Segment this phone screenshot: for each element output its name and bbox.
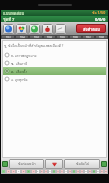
staticText: ส่งคำตอบ [83,26,100,32]
button[interactable]: ชุด1 [1,35,15,39]
staticText: 2 [8,170,10,173]
staticText: ชุดที่ 7 [3,16,15,22]
button[interactable]: Search [29,24,40,34]
button[interactable]: Categories [16,24,27,34]
button[interactable]: ชุด4 [43,35,56,39]
staticText: 1 [3,170,5,173]
staticText: ก. [11,53,14,58]
staticText: 17 [73,170,76,173]
button[interactable]: 23 [96,169,100,174]
button[interactable]: 12 [52,169,56,174]
staticText: 9 [41,170,43,173]
button[interactable]: 13 [56,169,60,174]
button[interactable]: 15 [64,169,68,174]
staticText: ชุด2 [20,35,25,39]
staticText: ชุด4 [47,35,52,39]
staticText: ชุด5 [60,35,65,39]
staticText: ค. [11,69,15,74]
button[interactable]: 17 [72,169,76,174]
staticText: 8 [37,170,39,173]
button[interactable]: ข. [2,59,107,67]
staticText: เลือกตั้ง [16,69,27,74]
button[interactable]: Home [2,161,8,167]
staticText: 16 [69,170,72,173]
button[interactable]: Menu [101,161,107,167]
button[interactable]: 22 [92,169,96,174]
staticText: 24 [101,170,104,173]
staticText: 19 [81,170,84,173]
button[interactable]: Flag question [45,159,63,169]
button[interactable]: 1 [1,169,6,174]
staticText: 14 [61,170,64,173]
staticText: 11 [49,170,52,173]
button[interactable]: 8 [36,169,40,174]
button[interactable]: ข้อก่อนหน้า [9,159,44,169]
button[interactable]: 14 [60,169,64,174]
staticText: 22 [93,170,96,173]
staticText: ข้อ 1/50 [92,10,106,16]
staticText: 7 [33,170,35,173]
staticText: ชุด1 [6,35,11,39]
staticText: 1. [4,44,7,49]
staticText: ข. [11,61,15,66]
staticText: 10 [45,170,48,173]
staticText: เคารพกฎหมาย [15,53,37,58]
button[interactable]: Bookmark [42,24,53,34]
button[interactable]: 3 [11,169,16,174]
button[interactable]: 24 [100,169,104,174]
button[interactable]: ชุด5 [56,35,69,39]
staticText: 25 [105,170,108,173]
button[interactable]: 21 [88,169,92,174]
staticText: 13 [57,170,60,173]
button[interactable]: 20 [84,169,88,174]
button[interactable]: ชุด7 [82,35,95,39]
staticText: ข้อก่อนหน้า [18,161,36,167]
staticText: 21 [89,170,92,173]
staticText: เสียภาษี [16,61,28,66]
button[interactable]: Information [3,24,14,34]
staticText: 18 [77,170,80,173]
staticText: แบบทดสอบ [3,10,25,16]
button[interactable]: ชุด3 [29,35,43,39]
staticText: ชุด3 [34,35,39,39]
button[interactable]: 5 [21,169,26,174]
staticText: 3 [13,170,15,173]
button[interactable]: ชุด2 [15,35,29,39]
staticText: 6 [28,170,30,173]
button[interactable]: ง. [2,75,107,83]
staticText: ข้อถัดไป [76,161,89,167]
button[interactable]: ส่งคำตอบ [76,24,106,33]
button[interactable]: ชุด6 [69,35,82,39]
staticText: ชุด6 [73,35,78,39]
staticText: ข้อใดเป็นหน้าที่สำคัญของพลเมืองดี ? [8,43,64,49]
button[interactable]: 19 [80,169,84,174]
button[interactable]: ก. [2,51,107,59]
button[interactable]: ค. [2,67,107,75]
button[interactable]: 9 [40,169,44,174]
button[interactable]: 10 [44,169,48,174]
staticText: 4 [18,170,20,173]
staticText: ถูกทุกข้อ [15,77,28,82]
button[interactable]: ข้อถัดไป [64,159,100,169]
button[interactable]: 6 [26,169,31,174]
staticText: ชุด7 [86,35,91,39]
button[interactable]: 4 [16,169,21,174]
staticText: ชุด8 [99,35,104,39]
button[interactable]: 18 [76,169,80,174]
button[interactable]: 25 [104,169,108,174]
staticText: 0/0/0 [95,17,106,22]
button[interactable]: 7 [31,169,36,174]
button[interactable]: 11 [48,169,52,174]
staticText: 20 [85,170,88,173]
staticText: ง. [11,77,14,82]
staticText: 23 [97,170,100,173]
button[interactable]: 2 [6,169,11,174]
button[interactable]: 16 [68,169,72,174]
staticText: 5 [23,170,25,173]
button[interactable]: Notes [55,24,66,34]
staticText: 15 [65,170,68,173]
staticText: 12 [53,170,56,173]
button[interactable]: ชุด8 [95,35,108,39]
